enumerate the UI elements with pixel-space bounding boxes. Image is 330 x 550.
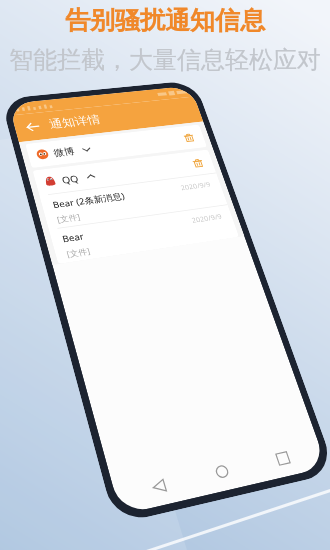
staticText: Bear — [61, 230, 85, 245]
staticText: 通知详情 — [47, 113, 102, 132]
staticText: 2020/9/9 — [179, 179, 212, 192]
staticText: 智能拦截，大量信息轻松应对 — [9, 45, 321, 75]
staticText: [文件] — [65, 245, 91, 259]
button[interactable]: Bear (2条新消息) — [39, 173, 227, 229]
button[interactable]: Home — [208, 458, 237, 485]
button[interactable]: Bear — [49, 205, 239, 264]
button[interactable]: QQ — [32, 149, 239, 264]
button[interactable]: 微博 — [25, 124, 207, 168]
button[interactable]: Back — [144, 472, 173, 500]
button[interactable]: Delete — [189, 156, 206, 170]
button[interactable]: Delete — [181, 131, 197, 144]
staticText: 告别骚扰通知信息 — [65, 5, 265, 36]
button[interactable]: Back — [21, 118, 44, 136]
button[interactable]: Recents — [268, 445, 297, 471]
staticText: 2020/9/9 — [190, 211, 223, 225]
staticText: 微博 — [52, 145, 76, 159]
staticText: [文件] — [55, 211, 81, 224]
staticText: QQ — [60, 172, 80, 186]
staticText: Bear (2条新消息) — [51, 190, 127, 211]
